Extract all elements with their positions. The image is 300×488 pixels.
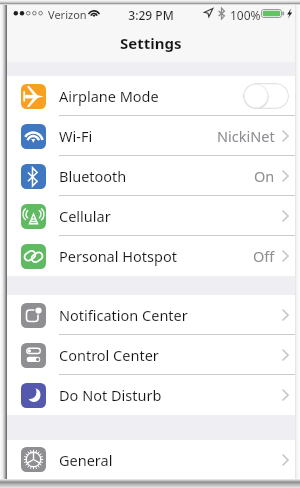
staticText: On xyxy=(254,166,275,186)
staticText: Settings xyxy=(120,33,182,53)
staticText: 100% xyxy=(230,7,261,23)
button[interactable]: Control Center xyxy=(7,335,295,375)
staticText: Control Center xyxy=(59,345,159,365)
button[interactable]: Wi-Fi xyxy=(7,116,295,156)
button[interactable]: Airplane Mode xyxy=(7,76,295,116)
button[interactable]: Notification Center xyxy=(7,295,295,335)
staticText: Cellular xyxy=(59,206,111,226)
staticText: Airplane Mode xyxy=(59,86,159,106)
button[interactable]: Bluetooth xyxy=(7,156,295,196)
staticText: Notification Center xyxy=(59,305,188,325)
staticText: Personal Hotspot xyxy=(59,246,177,266)
button[interactable]: Personal Hotspot xyxy=(7,236,295,276)
button[interactable]: Do Not Disturb xyxy=(7,375,295,415)
staticText: 3:29 PM xyxy=(7,7,295,23)
staticText: Do Not Disturb xyxy=(59,385,162,405)
staticText: General xyxy=(59,450,113,470)
button[interactable]: Cellular xyxy=(7,196,295,236)
staticText: Verizon xyxy=(48,7,87,22)
staticText: Off xyxy=(253,246,275,266)
staticText: NickiNet xyxy=(217,126,275,146)
button[interactable]: Airplane Mode toggle xyxy=(243,83,289,109)
button[interactable]: General xyxy=(7,440,295,479)
staticText: Wi-Fi xyxy=(59,126,93,146)
staticText: Bluetooth xyxy=(59,166,127,186)
